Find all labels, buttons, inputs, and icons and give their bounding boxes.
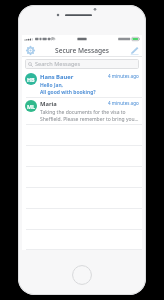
staticText: Maria [40,100,57,108]
staticText: Secure Messages [55,46,110,55]
staticText: Taking the documents for the visa to [40,109,126,116]
staticText: HB [27,76,35,83]
staticText: ML [27,103,36,110]
staticText: Sheffield. Please remember to bring your… [40,116,139,123]
button[interactable]: ML [22,98,142,125]
staticText: Hans Bauer [40,73,74,81]
staticText: Search Messages [35,60,81,68]
staticText: Hello Jan, [40,82,63,89]
button[interactable]: HB [22,71,142,98]
button[interactable]: Settings [24,44,36,56]
staticText: All good with booking? [40,89,96,96]
staticText: 4 minutes ago [108,100,139,106]
button[interactable]: Search Messages [25,59,139,69]
button[interactable]: Home [72,265,92,285]
button[interactable]: Compose [128,44,140,56]
staticText: 4 minutes ago [108,73,139,79]
